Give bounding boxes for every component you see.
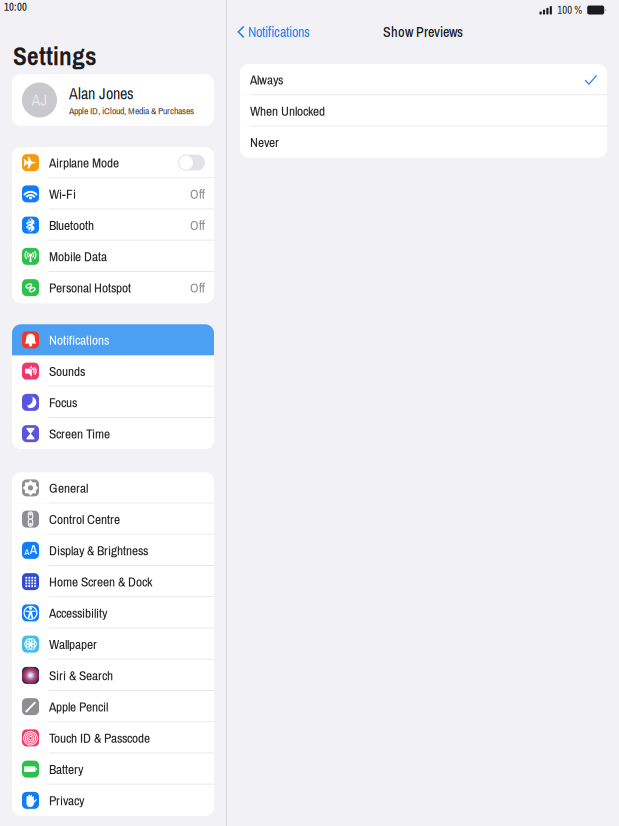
button[interactable]: Screen Time [12, 418, 214, 449]
staticText: A [24, 545, 29, 558]
button[interactable]: Mobile Data [12, 241, 214, 272]
staticText: Personal Hotspot [49, 279, 131, 297]
button[interactable]: Accessibility [12, 597, 214, 628]
staticText: Alan Jones [69, 83, 134, 104]
button[interactable]: Bluetooth [12, 209, 214, 241]
staticText: When Unlocked [250, 102, 325, 120]
staticText: Display & Brightness [49, 541, 148, 559]
button[interactable]: Home Screen & Dock [12, 566, 214, 597]
staticText: Notifications [49, 331, 109, 349]
button[interactable]: Never [240, 126, 607, 158]
staticText: Off [190, 185, 205, 203]
staticText: Off [190, 216, 205, 234]
button[interactable]: Control Centre [12, 503, 214, 535]
button[interactable]: Privacy [12, 785, 214, 816]
button[interactable]: Notifications [12, 324, 214, 355]
button[interactable]: AJ [12, 74, 214, 126]
staticText: Apple Pencil [49, 698, 108, 716]
staticText: Privacy [49, 791, 84, 809]
button[interactable]: Apple Pencil [12, 691, 214, 722]
staticText: 10:00 [4, 0, 27, 14]
staticText: Sounds [49, 362, 85, 380]
staticText: Always [250, 71, 283, 89]
staticText: Off [190, 279, 205, 297]
button[interactable]: Touch ID & Passcode [12, 722, 214, 753]
staticText: Wallpaper [49, 635, 97, 653]
staticText: Battery [49, 760, 83, 778]
button[interactable]: Wi-Fi [12, 178, 214, 209]
button[interactable]: Personal Hotspot [12, 272, 214, 303]
button[interactable]: Notifications [237, 19, 310, 45]
button[interactable]: Battery [12, 753, 214, 785]
staticText: Never [250, 133, 279, 151]
staticText: General [49, 479, 88, 497]
button[interactable]: Siri & Search [12, 660, 214, 691]
staticText: 100 % [557, 3, 582, 17]
button[interactable]: Sounds [12, 355, 214, 387]
button[interactable]: When Unlocked [240, 95, 607, 126]
staticText: Airplane Mode [49, 154, 119, 172]
staticText: Wi-Fi [49, 185, 76, 203]
staticText: Apple ID, iCloud, Media & Purchases [69, 104, 194, 117]
staticText: Home Screen & Dock [49, 573, 152, 591]
staticText: Focus [49, 393, 77, 411]
button[interactable]: Always [240, 64, 607, 95]
staticText: AJ [31, 89, 47, 111]
staticText: Touch ID & Passcode [49, 729, 150, 747]
staticText: Screen Time [49, 425, 110, 443]
button[interactable]: Wallpaper [12, 628, 214, 660]
staticText: Show Previews [383, 23, 463, 41]
button[interactable]: General [12, 472, 214, 503]
staticText: Control Centre [49, 510, 120, 528]
staticText: Siri & Search [49, 666, 113, 684]
staticText: Accessibility [49, 604, 107, 622]
staticText: A [30, 540, 37, 558]
staticText: Settings [13, 39, 97, 73]
button[interactable]: Focus [12, 387, 214, 418]
button[interactable]: A [12, 535, 214, 566]
button[interactable]: Airplane Mode [12, 147, 214, 178]
staticText: Bluetooth [49, 216, 94, 234]
staticText: Notifications [248, 23, 310, 41]
staticText: Mobile Data [49, 247, 107, 265]
